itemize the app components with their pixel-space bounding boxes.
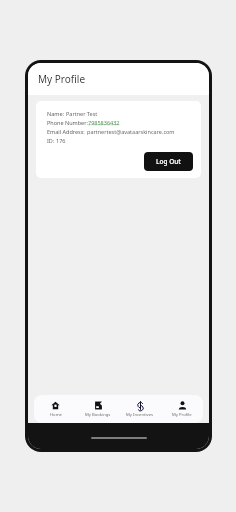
button[interactable]: Log Out — [144, 152, 193, 171]
staticText: My Profile — [38, 72, 86, 86]
button[interactable]: My Profile — [161, 395, 203, 423]
staticText: Home — [50, 412, 62, 418]
staticText: ID: — [47, 137, 56, 144]
button[interactable]: My Incentives — [119, 395, 161, 423]
staticText: My Bookings — [85, 412, 111, 418]
staticText: My Incentives — [126, 412, 154, 418]
staticText: partnertest@avataarskincare.com — [87, 128, 175, 135]
staticText: 176 — [56, 137, 66, 144]
staticText: Log Out — [156, 157, 181, 166]
staticText: Partner Test — [66, 110, 98, 117]
button[interactable]: My Bookings — [77, 395, 119, 423]
button[interactable]: 7985836432 — [88, 119, 120, 126]
staticText: Name: — [47, 110, 66, 117]
staticText: Email Address: — [47, 128, 87, 135]
staticText: Phone Number: — [47, 119, 88, 126]
button[interactable]: Home — [34, 395, 77, 423]
staticText: My Profile — [172, 412, 192, 418]
